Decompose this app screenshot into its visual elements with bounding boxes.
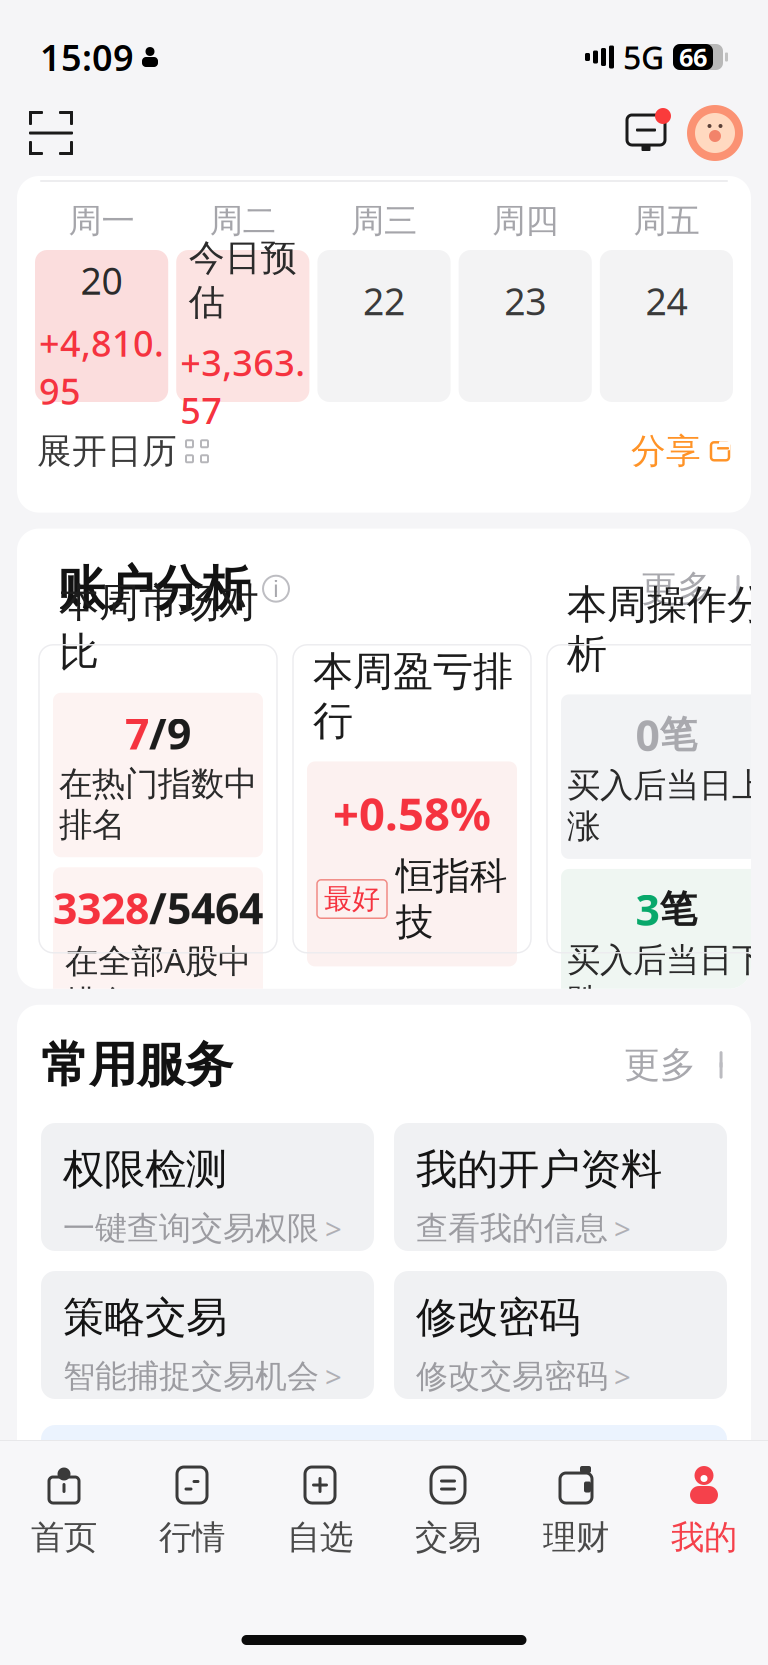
button[interactable]: 策略交易 <box>41 1271 374 1399</box>
staticText: 查看我的信息 <box>416 1209 608 1248</box>
button[interactable]: 扫一扫 <box>24 106 78 160</box>
staticText: 业务办理中遇到问题? <box>67 1452 416 1502</box>
staticText: > <box>614 1357 631 1396</box>
staticText: 周一 <box>69 200 135 241</box>
staticText: 22 <box>363 276 405 326</box>
staticText: 理财 <box>543 1517 609 1558</box>
staticText: 买入后当日下跌 <box>567 940 765 1021</box>
button[interactable]: 行情 <box>128 1459 256 1562</box>
button[interactable]: 消息 <box>618 105 674 161</box>
staticText: 一键查询交易权限 <box>63 1209 319 1248</box>
staticText: 常用服务 <box>41 1035 233 1094</box>
staticText: 修改交易密码 <box>416 1357 608 1396</box>
staticText: i <box>273 574 279 604</box>
staticText: 周三 <box>351 200 417 241</box>
button[interactable]: 展开日历 <box>37 422 208 481</box>
staticText: 7 <box>125 705 149 761</box>
staticText: 24 <box>645 276 687 326</box>
staticText: 3328 <box>53 879 149 936</box>
staticText: +3,363.57 <box>180 338 305 434</box>
button[interactable]: 更多 <box>641 559 744 619</box>
staticText: 智能捕捉交易机会 <box>63 1357 319 1396</box>
button[interactable]: 修改密码 <box>394 1271 727 1399</box>
button[interactable]: 我的开户资料 <box>394 1123 727 1251</box>
staticText: 20 <box>81 255 123 305</box>
button[interactable]: 分享 <box>631 422 731 481</box>
staticText: 3 <box>635 881 659 938</box>
button[interactable]: 交易 <box>384 1459 512 1562</box>
staticText: 我的开户资料 <box>416 1144 662 1195</box>
staticText: 展开日历 <box>37 430 177 473</box>
staticText: > <box>325 1357 342 1396</box>
staticText: > <box>614 1209 631 1248</box>
staticText: +0.58% <box>333 783 491 843</box>
button[interactable]: 周三 <box>317 204 451 402</box>
button[interactable]: 我的 <box>640 1459 768 1562</box>
staticText: 买入后当日上涨 <box>567 765 765 847</box>
button[interactable]: 周二 <box>176 204 309 402</box>
button[interactable]: 自选 <box>256 1459 384 1562</box>
staticText: 本周操作分析 <box>567 580 767 678</box>
staticText: 最好 <box>324 882 380 916</box>
staticText: 15:09 <box>40 33 134 81</box>
staticText: 行情 <box>159 1517 225 1558</box>
staticText: 修改密码 <box>416 1292 580 1343</box>
button[interactable]: 本周市场对比 <box>39 645 277 953</box>
staticText: +4,810.95 <box>39 319 164 415</box>
staticText: 笔 <box>659 712 696 758</box>
button[interactable]: 本周盈亏排行 <box>293 645 531 953</box>
staticText: 策略交易 <box>63 1292 227 1343</box>
staticText: 今日预估 <box>189 236 297 324</box>
staticText: 分享 <box>631 430 701 473</box>
button[interactable]: 周一 <box>35 204 168 402</box>
staticText: 周五 <box>633 200 699 241</box>
staticText: 在全部A股中排名 <box>65 938 251 1023</box>
button[interactable]: 业务办理中遇到问题? <box>41 1425 727 1529</box>
staticText: 更多 <box>624 1043 696 1087</box>
button[interactable]: 理财 <box>512 1459 640 1562</box>
button[interactable]: 本周操作分析 <box>547 645 768 953</box>
staticText: 23 <box>504 276 546 326</box>
staticText: 交易 <box>415 1517 481 1558</box>
staticText: 5G <box>623 36 664 78</box>
staticText: 0 <box>635 706 659 763</box>
button[interactable]: 个人中心 <box>674 104 744 162</box>
staticText: 我的 <box>671 1517 737 1558</box>
staticText: 7*24在线咨询 <box>462 1454 681 1500</box>
staticText: 66 <box>679 40 707 74</box>
staticText: 在热门指数中排名 <box>59 763 257 845</box>
staticText: 周四 <box>492 200 558 241</box>
staticText: 自选 <box>287 1517 353 1558</box>
button[interactable]: 首页 <box>0 1459 128 1562</box>
button[interactable]: 周五 <box>600 204 733 402</box>
staticText: 本周市场对比 <box>59 578 259 677</box>
button[interactable]: 周四 <box>459 204 592 402</box>
staticText: 首页 <box>31 1517 97 1558</box>
staticText: 本周盈亏排行 <box>313 647 513 745</box>
staticText: 周二 <box>210 200 276 241</box>
staticText: 笔 <box>659 886 696 932</box>
staticText: 权限检测 <box>63 1144 227 1195</box>
staticText: 账户分析 <box>58 559 250 618</box>
staticText: > <box>325 1209 342 1248</box>
staticText: /5464 <box>149 879 263 936</box>
button[interactable]: 更多 <box>624 1035 727 1095</box>
staticText: 恒指科技 <box>396 853 507 945</box>
button[interactable]: 说明 <box>250 569 290 609</box>
staticText: /9 <box>149 705 191 761</box>
button[interactable]: 权限检测 <box>41 1123 374 1251</box>
staticText: 更多 <box>641 567 713 611</box>
